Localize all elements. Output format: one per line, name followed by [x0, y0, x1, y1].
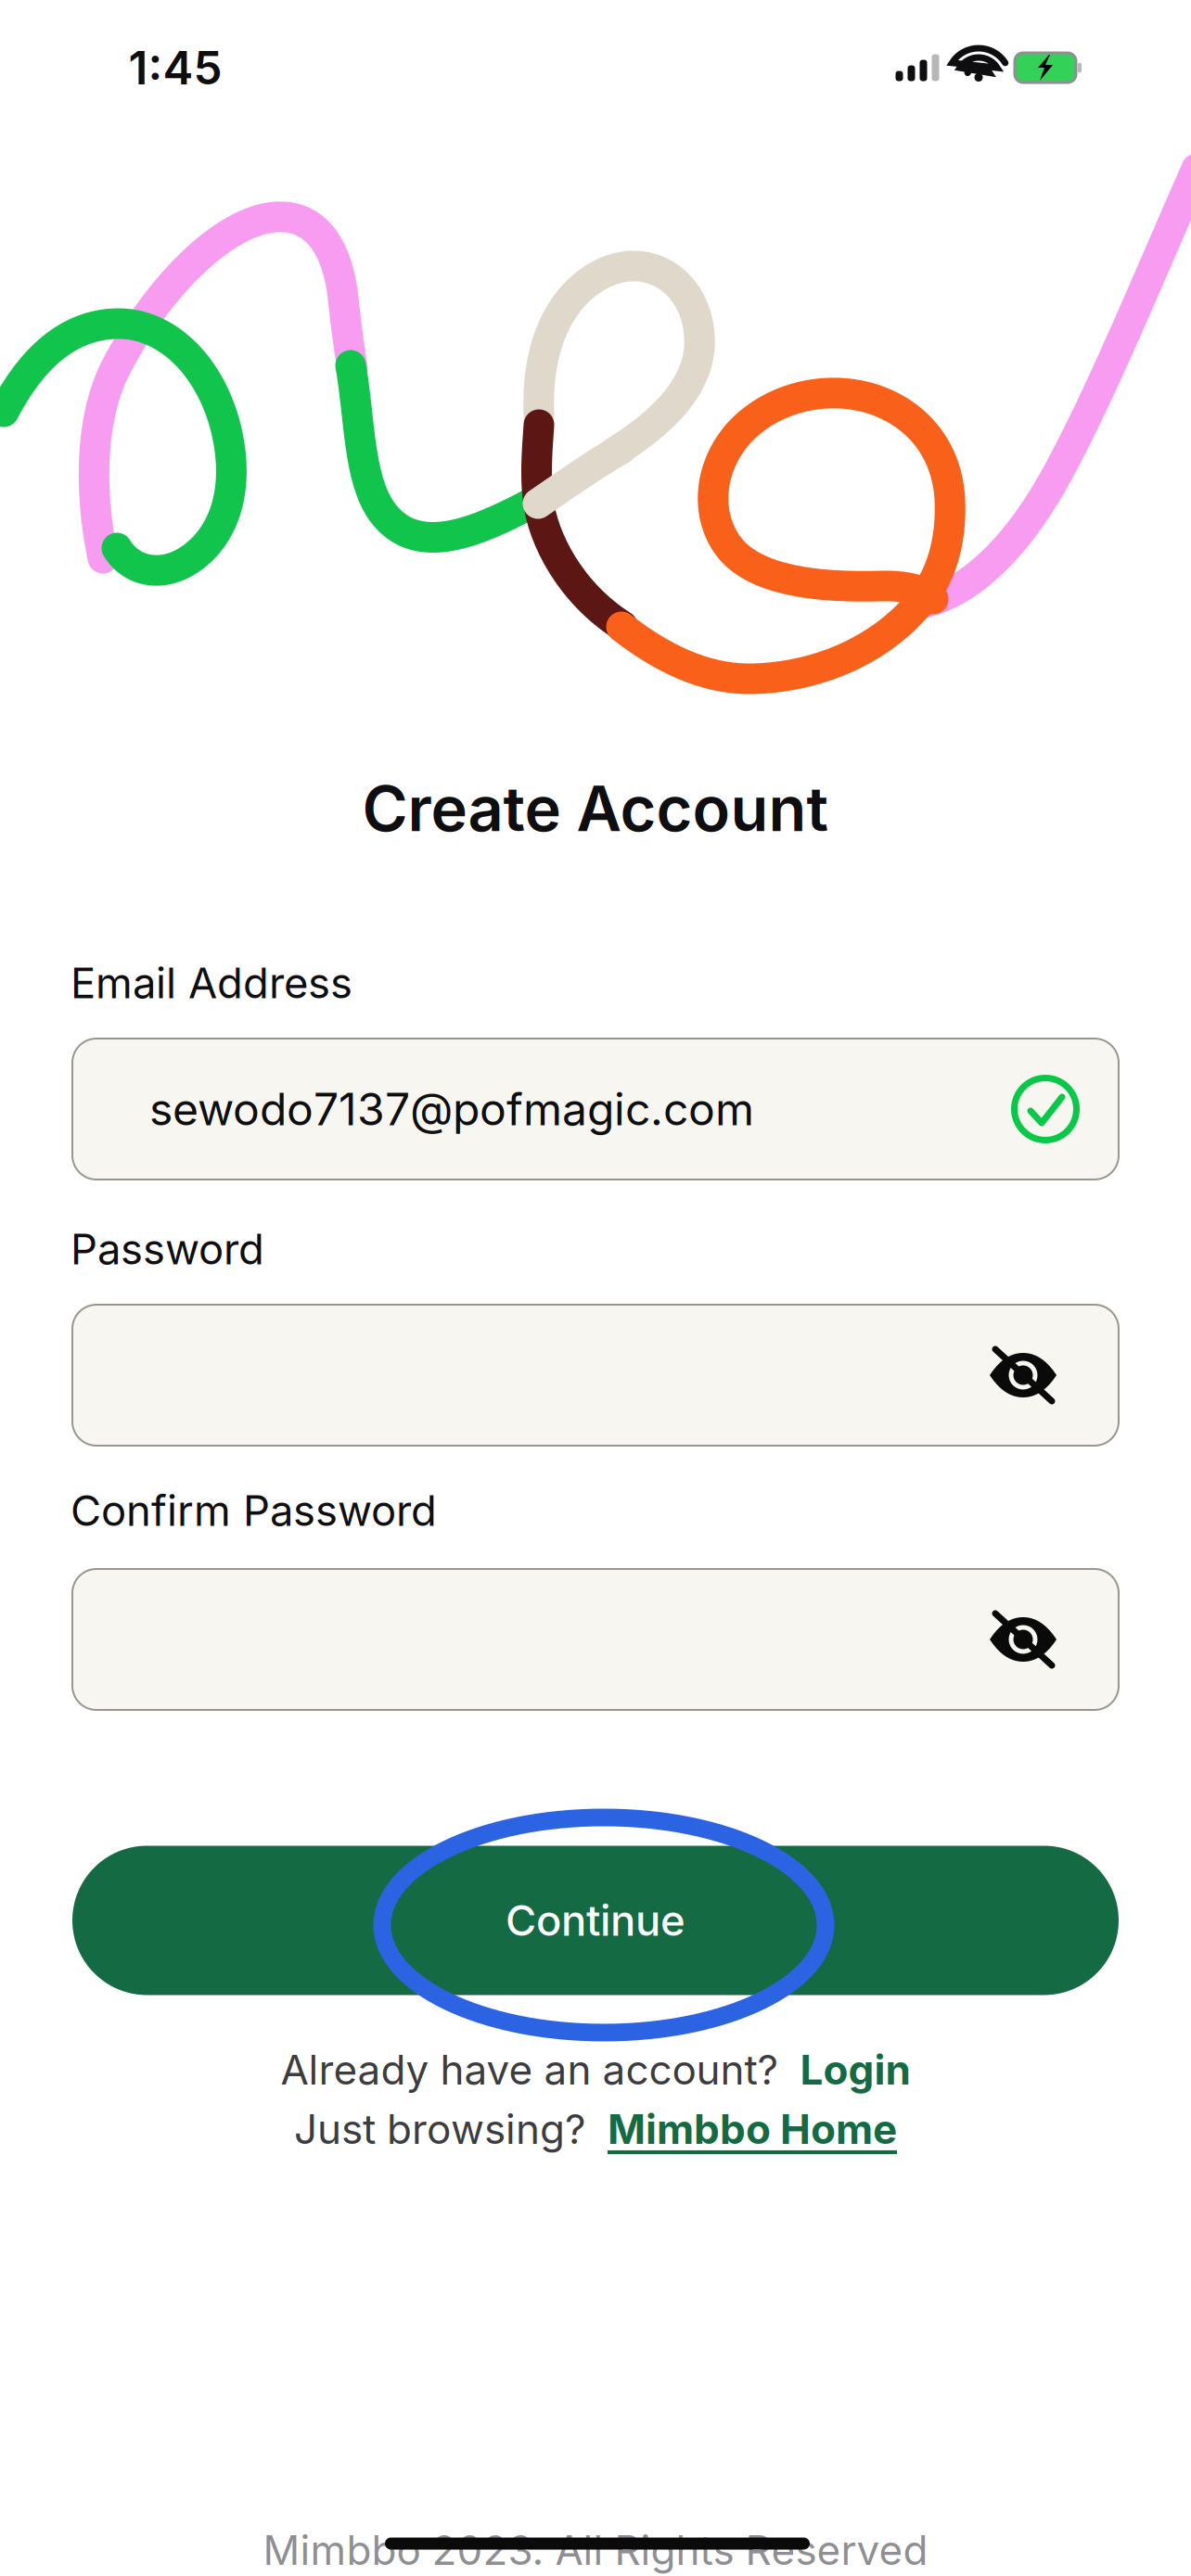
staticText: Just browsing? — [294, 2104, 608, 2154]
staticText: Mimbbo Home — [608, 2104, 897, 2154]
staticText: 1:45 — [128, 40, 222, 95]
staticText: Continue — [506, 1895, 685, 1946]
button[interactable]: Show password — [987, 1346, 1059, 1404]
button[interactable]: Mimbbo Home — [608, 2104, 897, 2154]
staticText: Create Account — [362, 771, 829, 846]
staticText: Mimbbo 2023. All Rights Reserved — [263, 2525, 928, 2575]
button[interactable]: Show confirm password — [987, 1611, 1059, 1668]
button[interactable]: Login — [800, 2045, 910, 2094]
staticText: Confirm Password — [70, 1485, 437, 1536]
staticText: Already have an account? — [281, 2045, 800, 2094]
staticText: sewodo7137@pofmagic.com — [149, 1082, 754, 1136]
staticText: Email Address — [70, 958, 352, 1008]
staticText: Password — [70, 1224, 264, 1275]
button[interactable]: Continue — [72, 1846, 1119, 1995]
staticText: Login — [800, 2045, 910, 2094]
